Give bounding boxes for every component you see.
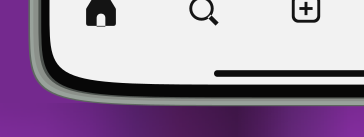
button[interactable]: Search: [0, 0, 364, 137]
button[interactable]: Home: [0, 0, 364, 137]
button[interactable]: New post: [0, 0, 364, 137]
